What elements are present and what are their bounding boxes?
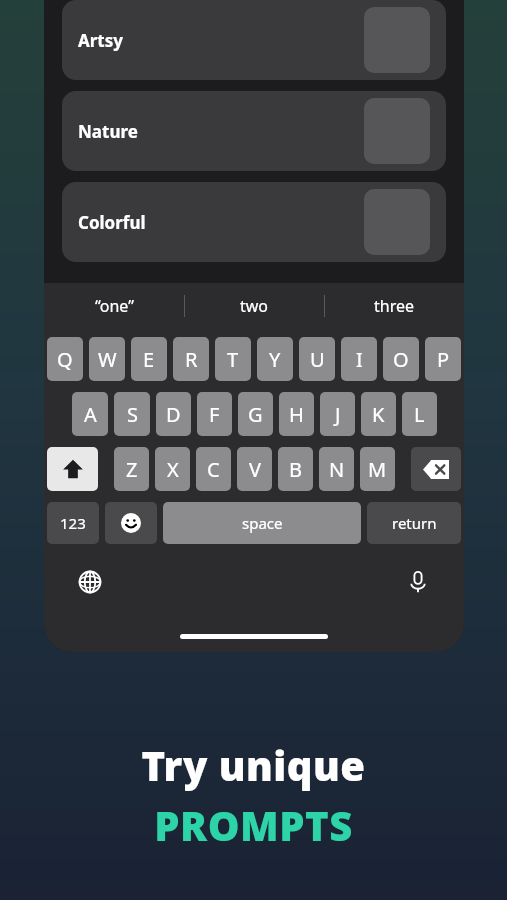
button[interactable]: Nature xyxy=(62,91,446,171)
staticText: E xyxy=(143,346,155,373)
button[interactable]: Emoji xyxy=(105,502,157,544)
staticText: Y xyxy=(269,346,281,373)
button[interactable]: three xyxy=(325,283,464,329)
button[interactable]: two xyxy=(185,283,324,329)
staticText: G xyxy=(248,401,263,428)
staticText: M xyxy=(368,456,387,483)
staticText: I xyxy=(356,346,363,373)
button[interactable]: Dictation xyxy=(400,564,436,600)
button[interactable]: R xyxy=(173,337,209,381)
staticText: X xyxy=(167,456,179,483)
button[interactable]: Y xyxy=(257,337,293,381)
staticText: space xyxy=(242,513,283,533)
staticText: Colorful xyxy=(78,211,146,234)
staticText: W xyxy=(98,346,117,373)
button[interactable]: Colorful xyxy=(62,182,446,262)
button[interactable]: N xyxy=(319,447,354,491)
button[interactable]: M xyxy=(360,447,395,491)
button[interactable]: K xyxy=(361,392,396,436)
staticText: F xyxy=(209,401,220,428)
button[interactable]: E xyxy=(131,337,167,381)
button[interactable]: Delete xyxy=(411,447,461,491)
button[interactable]: J xyxy=(320,392,355,436)
staticText: L xyxy=(414,401,425,428)
staticText: return xyxy=(392,513,437,533)
staticText: U xyxy=(310,346,325,373)
button[interactable]: F xyxy=(197,392,232,436)
button[interactable]: Artsy xyxy=(62,0,446,80)
staticText: Try unique xyxy=(141,738,366,792)
staticText: P xyxy=(437,346,450,373)
staticText: B xyxy=(289,456,302,483)
staticText: N xyxy=(329,456,345,483)
button[interactable]: V xyxy=(237,447,272,491)
button[interactable]: “one” xyxy=(44,283,184,329)
button[interactable]: Q xyxy=(47,337,83,381)
button[interactable]: 123 xyxy=(47,502,99,544)
staticText: S xyxy=(127,401,138,428)
staticText: K xyxy=(372,401,385,428)
button[interactable]: C xyxy=(196,447,231,491)
staticText: O xyxy=(393,346,409,373)
staticText: 123 xyxy=(60,513,86,533)
staticText: Nature xyxy=(78,120,138,143)
button[interactable]: U xyxy=(299,337,335,381)
staticText: PROMPTS xyxy=(154,798,353,852)
button[interactable]: S xyxy=(114,392,150,436)
staticText: J xyxy=(335,401,341,428)
button[interactable]: Shift xyxy=(47,447,98,491)
staticText: D xyxy=(166,401,181,428)
staticText: V xyxy=(249,456,261,483)
button[interactable]: B xyxy=(278,447,313,491)
button[interactable]: A xyxy=(72,392,108,436)
button[interactable]: P xyxy=(425,337,461,381)
staticText: Z xyxy=(126,456,138,483)
button[interactable]: L xyxy=(402,392,437,436)
button[interactable]: T xyxy=(215,337,251,381)
staticText: Q xyxy=(57,346,73,373)
button[interactable]: D xyxy=(156,392,191,436)
staticText: Artsy xyxy=(78,29,123,52)
button[interactable]: X xyxy=(155,447,190,491)
button[interactable]: space xyxy=(163,502,361,544)
staticText: “one” xyxy=(95,295,134,317)
button[interactable]: W xyxy=(89,337,125,381)
button[interactable]: O xyxy=(383,337,419,381)
staticText: R xyxy=(185,346,198,373)
staticText: A xyxy=(84,401,97,428)
staticText: three xyxy=(374,295,415,317)
staticText: T xyxy=(227,346,239,373)
button[interactable]: H xyxy=(279,392,314,436)
button[interactable]: Change keyboard language xyxy=(72,564,108,600)
button[interactable]: return xyxy=(367,502,461,544)
button[interactable]: I xyxy=(341,337,377,381)
staticText: two xyxy=(240,295,269,317)
button[interactable]: Z xyxy=(114,447,149,491)
staticText: C xyxy=(207,456,220,483)
staticText: H xyxy=(289,401,304,428)
button[interactable]: G xyxy=(238,392,273,436)
